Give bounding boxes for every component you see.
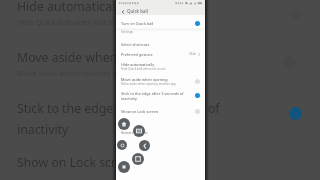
button[interactable]: Hide automatically xyxy=(116,59,205,73)
staticText: Preferred gesture xyxy=(121,52,153,57)
button[interactable]: Recents xyxy=(132,153,144,165)
staticText: Settings xyxy=(121,30,134,34)
staticText: Stick to the edge after 3 seconds of xyxy=(17,100,220,117)
button[interactable]: Lock xyxy=(118,161,130,173)
staticText: Move aside when opening xyxy=(121,77,168,82)
staticText: Move aside when opening another app xyxy=(121,82,177,86)
button[interactable]: Menu xyxy=(117,140,127,150)
button[interactable]: Back xyxy=(119,8,126,15)
button[interactable]: Turn on Quick ball xyxy=(116,17,205,29)
staticText: Show on Lock screen xyxy=(121,109,159,114)
staticText: inactivity xyxy=(17,121,69,138)
staticText: Turn on Quick ball xyxy=(121,21,154,26)
staticText: Show on Lock screen xyxy=(17,154,138,171)
staticText: Move aside when opening another app xyxy=(17,68,157,78)
button[interactable]: Move aside when opening xyxy=(116,74,205,88)
staticText: Hide automatically xyxy=(121,62,155,67)
staticText: Select shortcuts xyxy=(121,42,150,47)
button[interactable]: Show on Lock screen xyxy=(116,106,205,117)
button[interactable]: Stick to the edge after 3 seconds of ina… xyxy=(116,89,205,102)
staticText: Restore to defaults xyxy=(121,131,148,135)
button[interactable]: Back xyxy=(139,140,150,151)
staticText: Move aside when opening xyxy=(17,49,169,66)
staticText: Slide xyxy=(189,52,197,56)
staticText: Stick to the edge after 3 seconds of ina… xyxy=(121,91,195,101)
button[interactable]: Select shortcuts xyxy=(116,39,205,49)
button[interactable]: Screenshot xyxy=(133,125,145,137)
staticText: Quick ball xyxy=(127,8,148,14)
button[interactable]: Home xyxy=(118,118,130,130)
staticText: Hide Quick ball when not in use xyxy=(17,17,130,27)
staticText: Hide Quick ball when not in use xyxy=(121,67,166,71)
button[interactable]: Preferred gesture xyxy=(116,49,205,59)
staticText: Hide automatically xyxy=(17,0,125,15)
